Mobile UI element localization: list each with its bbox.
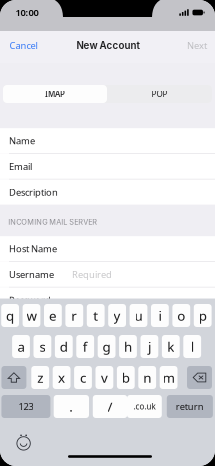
staticText: d [60, 338, 68, 355]
staticText: Description [9, 186, 58, 198]
staticText: Next [187, 39, 207, 52]
staticText: 10:00 [15, 6, 38, 19]
button[interactable]: Email [0, 154, 215, 179]
button[interactable]: h [119, 335, 137, 358]
staticText: IMAP [45, 89, 65, 99]
button[interactable]: POP [107, 85, 212, 103]
staticText: Cancel [9, 39, 37, 52]
staticText: . [69, 398, 73, 415]
button[interactable]: t [87, 304, 105, 327]
button[interactable]: g [98, 335, 115, 358]
button[interactable]: j [140, 335, 158, 358]
staticText: x [58, 369, 65, 386]
staticText: v [101, 369, 108, 386]
staticText: Name [9, 134, 35, 147]
button[interactable]: e [44, 304, 62, 327]
staticText: s [39, 338, 45, 355]
button[interactable]: Next [181, 34, 213, 56]
staticText: return [176, 400, 204, 413]
button[interactable]: b [117, 366, 135, 389]
button[interactable]: Delete [187, 366, 212, 389]
button[interactable]: a [12, 335, 30, 358]
button[interactable]: q [1, 304, 19, 327]
staticText: / [107, 398, 112, 415]
button[interactable]: s [33, 335, 51, 358]
staticText: 123 [18, 400, 33, 413]
staticText: y [114, 307, 121, 324]
staticText: New Account [76, 40, 139, 51]
staticText: i [158, 307, 161, 324]
button[interactable]: u [130, 304, 147, 327]
button[interactable]: m [160, 366, 177, 389]
staticText: o [177, 307, 185, 324]
button[interactable]: w [23, 304, 40, 327]
staticText: n [143, 369, 151, 386]
button[interactable]: l [183, 335, 201, 358]
staticText: j [148, 338, 151, 355]
staticText: m [163, 369, 175, 386]
button[interactable]: o [172, 304, 190, 327]
button[interactable]: n [138, 366, 156, 389]
button[interactable]: Description [0, 180, 215, 205]
button[interactable]: 123 [1, 395, 50, 418]
button[interactable]: Host Name [0, 236, 215, 261]
staticText: f [83, 338, 88, 355]
staticText: u [134, 307, 142, 324]
staticText: r [71, 307, 77, 324]
button[interactable]: . [54, 395, 89, 418]
button[interactable]: Name [0, 128, 215, 153]
button[interactable]: Shift [1, 366, 26, 389]
staticText: Username [9, 268, 54, 281]
staticText: z [37, 369, 43, 386]
button[interactable]: c [74, 366, 92, 389]
button[interactable]: r [65, 304, 83, 327]
staticText: p [199, 307, 207, 324]
staticText: b [122, 369, 130, 386]
staticText: c [80, 369, 86, 386]
staticText: e [49, 307, 57, 324]
staticText: q [6, 307, 14, 324]
staticText: g [103, 338, 111, 355]
button[interactable]: v [95, 366, 113, 389]
staticText: POP [151, 89, 167, 99]
button[interactable]: Username [0, 262, 215, 287]
button[interactable]: .co.uk [127, 395, 162, 418]
staticText: a [17, 338, 24, 355]
staticText: INCOMING MAIL SERVER [8, 218, 97, 226]
staticText: .co.uk [133, 401, 155, 412]
button[interactable]: f [76, 335, 94, 358]
staticText: Password [9, 294, 51, 306]
staticText: Required [72, 268, 112, 281]
staticText: Host Name [9, 242, 57, 255]
staticText: w [26, 307, 36, 324]
button[interactable]: Password [0, 288, 215, 313]
button[interactable]: return [167, 395, 213, 418]
staticText: t [93, 307, 98, 324]
staticText: h [124, 338, 132, 355]
button[interactable]: Cancel [3, 34, 43, 56]
button[interactable]: IMAP [3, 85, 107, 103]
staticText: l [191, 338, 194, 355]
staticText: Email [9, 160, 32, 173]
button[interactable]: d [55, 335, 73, 358]
button[interactable]: k [162, 335, 180, 358]
button[interactable]: / [93, 395, 127, 418]
button[interactable]: p [194, 304, 212, 327]
button[interactable]: x [53, 366, 70, 389]
button[interactable]: i [151, 304, 169, 327]
button[interactable]: y [108, 304, 126, 327]
staticText: k [167, 338, 174, 355]
button[interactable]: z [31, 366, 49, 389]
button[interactable]: Emoji keyboard [17, 437, 30, 450]
